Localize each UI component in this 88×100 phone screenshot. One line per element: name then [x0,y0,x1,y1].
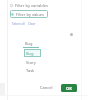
staticText: Bug [25,41,33,46]
button[interactable]: Clear [28,22,36,26]
button[interactable]: Task [26,68,35,73]
button[interactable]: Story [26,60,36,65]
button[interactable]: Filter by values [10,10,48,18]
staticText: Cancel [40,85,53,90]
staticText: Filter by variables [15,3,48,8]
button[interactable]: Filter by variables [10,2,48,9]
button[interactable]: OK [61,84,77,92]
staticText: Task [26,68,35,73]
button[interactable]: Bug [24,49,41,57]
staticText: Story [26,60,36,65]
button[interactable]: Cancel [40,85,53,90]
staticText: OK [66,86,72,91]
staticText: Bug [26,51,34,56]
button[interactable]: Select all [12,22,25,26]
staticText: Filter by values [16,12,44,17]
